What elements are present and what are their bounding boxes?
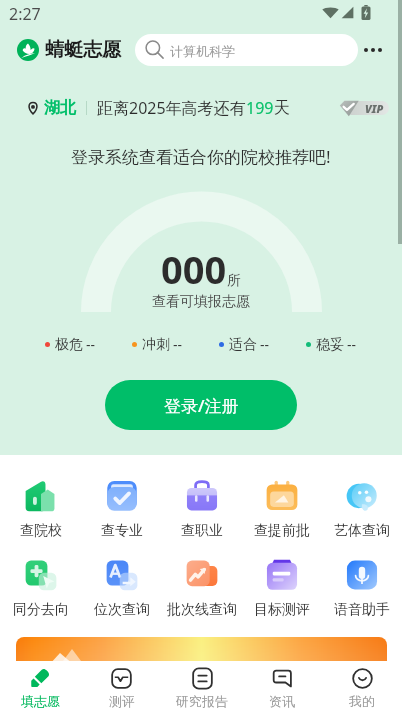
staticText: 填志愿: [21, 693, 60, 709]
staticText: 测评: [109, 693, 135, 709]
button[interactable]: 高三考生高考加油: [16, 637, 387, 677]
staticText: --: [260, 335, 270, 354]
staticText: 高三考生高考加油: [103, 663, 271, 677]
staticText: --: [347, 335, 357, 354]
button[interactable]: 批次线查询: [162, 559, 242, 619]
staticText: 计算机科学: [170, 43, 235, 59]
button[interactable]: 语音助手: [322, 559, 402, 619]
button[interactable]: 位次查询: [81, 559, 162, 619]
button[interactable]: 查职业: [162, 480, 242, 540]
staticText: 登录系统查看适合你的院校推荐吧!: [71, 145, 331, 168]
button[interactable]: 登录/注册: [105, 380, 297, 430]
button[interactable]: 我的: [322, 661, 402, 715]
staticText: 艺体查询: [334, 522, 390, 540]
staticText: 稳妥: [316, 336, 344, 354]
staticText: 语音助手: [334, 601, 390, 619]
staticText: VIP: [365, 101, 384, 115]
button[interactable]: 计算机科学: [135, 34, 358, 66]
staticText: 适合: [229, 336, 257, 354]
staticText: 199: [246, 97, 274, 118]
staticText: 极危: [55, 336, 83, 354]
staticText: 2:27: [9, 3, 41, 25]
button[interactable]: 查提前批: [242, 480, 322, 540]
staticText: 资讯: [269, 693, 295, 709]
button[interactable]: 目标测评: [242, 559, 322, 619]
staticText: 查专业: [101, 522, 143, 540]
staticText: 位次查询: [94, 601, 150, 619]
button[interactable]: 填志愿: [0, 661, 81, 715]
staticText: 蜻蜓志愿: [45, 38, 121, 62]
button[interactable]: 研究报告: [162, 661, 242, 715]
staticText: 查职业: [181, 522, 223, 540]
button[interactable]: 查院校: [0, 480, 81, 540]
staticText: 000: [161, 243, 227, 295]
button[interactable]: 同分去向: [0, 559, 81, 619]
staticText: 查院校: [20, 522, 62, 540]
staticText: 同分去向: [13, 601, 69, 619]
button[interactable]: 测评: [81, 661, 162, 715]
staticText: 查看可填报志愿: [152, 293, 250, 311]
staticText: 所: [227, 272, 241, 290]
button[interactable]: 艺体查询: [322, 480, 402, 540]
button[interactable]: 资讯: [242, 661, 322, 715]
staticText: 批次线查询: [167, 601, 237, 619]
staticText: 查提前批: [254, 522, 310, 540]
staticText: 湖北: [44, 98, 76, 118]
staticText: 登录/注册: [164, 394, 239, 417]
button[interactable]: More options: [358, 35, 388, 65]
staticText: 天: [274, 98, 290, 118]
button[interactable]: VIP: [339, 98, 389, 118]
staticText: 目标测评: [254, 601, 310, 619]
staticText: --: [173, 335, 183, 354]
staticText: 研究报告: [176, 693, 228, 709]
button[interactable]: 查专业: [81, 480, 162, 540]
staticText: 我的: [349, 693, 375, 709]
staticText: 距离2025年高考还有: [97, 97, 246, 118]
staticText: --: [86, 335, 96, 354]
staticText: 高三考生高考加油: [101, 661, 277, 677]
staticText: 冲刺: [142, 336, 170, 354]
